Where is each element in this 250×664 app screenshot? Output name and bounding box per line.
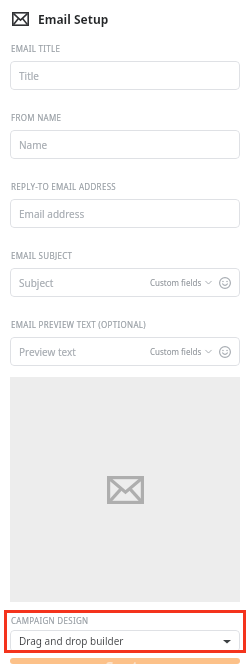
staticText: REPLY-TO EMAIL ADDRESS	[11, 181, 117, 192]
staticText: EMAIL PREVIEW TEXT (OPTIONAL)	[11, 319, 147, 330]
button[interactable]: Insert emoji	[219, 346, 231, 358]
staticText: Custom fields	[150, 277, 202, 288]
button[interactable]: Email design preview	[10, 377, 240, 602]
staticText: FROM NAME	[11, 112, 62, 123]
staticText: Preview text	[19, 345, 76, 359]
button[interactable]: Create	[10, 658, 240, 664]
button[interactable]: Title	[10, 61, 240, 90]
staticText: Title	[19, 69, 39, 83]
button[interactable]: Insert emoji	[219, 277, 231, 289]
button[interactable]: Email address	[10, 199, 240, 228]
button[interactable]: Subject	[10, 268, 240, 297]
staticText: Drag and drop builder	[19, 634, 124, 648]
button[interactable]: Preview text	[10, 337, 240, 366]
staticText: Name	[19, 138, 48, 152]
staticText: EMAIL TITLE	[11, 43, 61, 54]
staticText: Email address	[19, 207, 85, 221]
staticText: Create	[105, 658, 145, 664]
staticText: EMAIL SUBJECT	[11, 250, 73, 261]
staticText: Subject	[19, 276, 54, 290]
button[interactable]: Name	[10, 130, 240, 159]
staticText: Custom fields	[150, 346, 202, 357]
button[interactable]: Custom fields	[150, 277, 212, 288]
button[interactable]: Custom fields	[150, 346, 212, 357]
button[interactable]: Drag and drop builder	[10, 630, 240, 652]
staticText: CAMPAIGN DESIGN	[11, 615, 89, 626]
staticText: Email Setup	[38, 11, 109, 27]
